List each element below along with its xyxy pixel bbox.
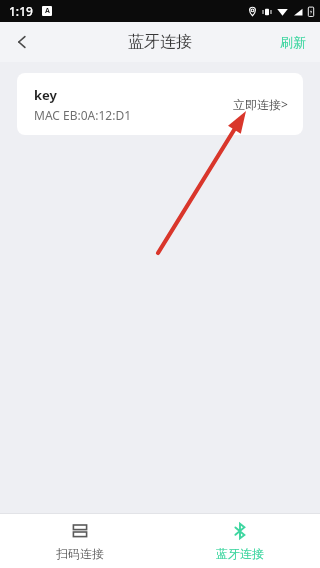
staticText: 立即连接> [233,96,288,112]
staticText: 1:19 [9,3,33,19]
staticText: A [45,6,50,16]
button[interactable]: 扫码连接 [0,514,160,568]
staticText: 扫码连接 [56,546,104,561]
button[interactable]: Back [0,22,44,62]
staticText: 蓝牙连接 [128,32,192,52]
button[interactable]: 蓝牙连接 [160,514,320,568]
button[interactable]: key [17,73,303,135]
staticText: 刷新 [280,34,306,50]
button[interactable]: 刷新 [266,22,320,62]
staticText: MAC EB:0A:12:D1 [34,107,132,123]
staticText: 蓝牙连接 [216,546,264,561]
staticText: key [34,86,57,104]
